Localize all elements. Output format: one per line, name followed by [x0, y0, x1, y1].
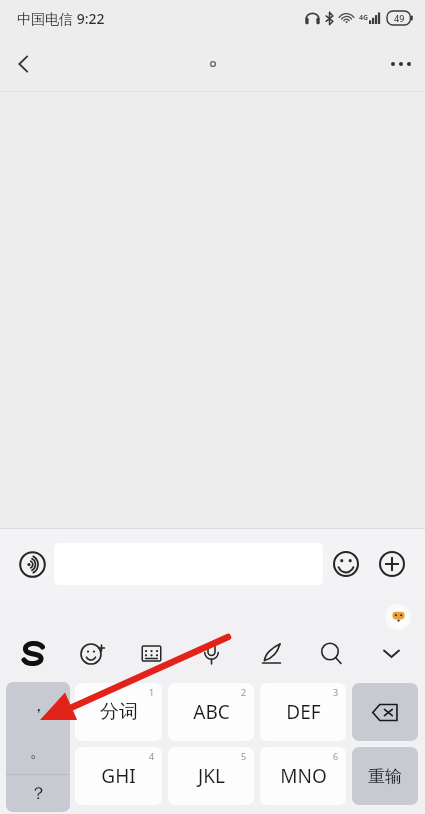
button[interactable]: Voice: [181, 630, 241, 676]
staticText: GHI: [101, 763, 136, 789]
staticText: 3: [333, 686, 339, 698]
button[interactable]: Delete: [352, 683, 418, 741]
button[interactable]: Emoji panel: [63, 630, 122, 676]
staticText: 中国电信 9:22: [17, 9, 105, 28]
staticText: ？: [30, 783, 47, 804]
button[interactable]: Hide keyboard: [361, 630, 421, 676]
button[interactable]: Add: [369, 541, 415, 587]
button[interactable]: Emoji: [323, 541, 369, 587]
button[interactable]: Back: [0, 40, 48, 88]
staticText: 分词: [100, 700, 138, 724]
staticText: 2: [241, 686, 247, 698]
button[interactable]: 分词: [75, 683, 162, 741]
staticText: MNO: [280, 763, 327, 789]
button[interactable]: MNO: [260, 747, 346, 805]
button[interactable]: Handwriting: [241, 630, 301, 676]
button[interactable]: More options: [377, 40, 425, 88]
button[interactable]: Keyboard layout: [122, 630, 181, 676]
staticText: ABC: [193, 699, 230, 725]
staticText: 5: [241, 750, 247, 762]
button[interactable]: ，: [6, 682, 70, 812]
staticText: 6: [333, 750, 339, 762]
button[interactable]: GHI: [75, 747, 162, 805]
staticText: 。: [30, 741, 47, 762]
staticText: JKL: [198, 763, 225, 789]
button[interactable]: ABC: [168, 683, 254, 741]
staticText: ，: [30, 695, 47, 716]
button[interactable]: JKL: [168, 747, 254, 805]
button[interactable]: 重输: [352, 747, 418, 805]
staticText: 4G: [359, 13, 369, 23]
button[interactable]: Sogou input method: [4, 630, 63, 676]
staticText: 重输: [368, 766, 402, 787]
staticText: 1: [149, 686, 155, 698]
button[interactable]: DEF: [260, 683, 346, 741]
staticText: 4: [149, 750, 155, 762]
staticText: DEF: [286, 699, 321, 725]
button[interactable]: Search: [301, 630, 361, 676]
button[interactable]: Sticker: [385, 604, 411, 630]
staticText: 49: [394, 12, 405, 24]
button[interactable]: Voice input: [10, 542, 54, 586]
